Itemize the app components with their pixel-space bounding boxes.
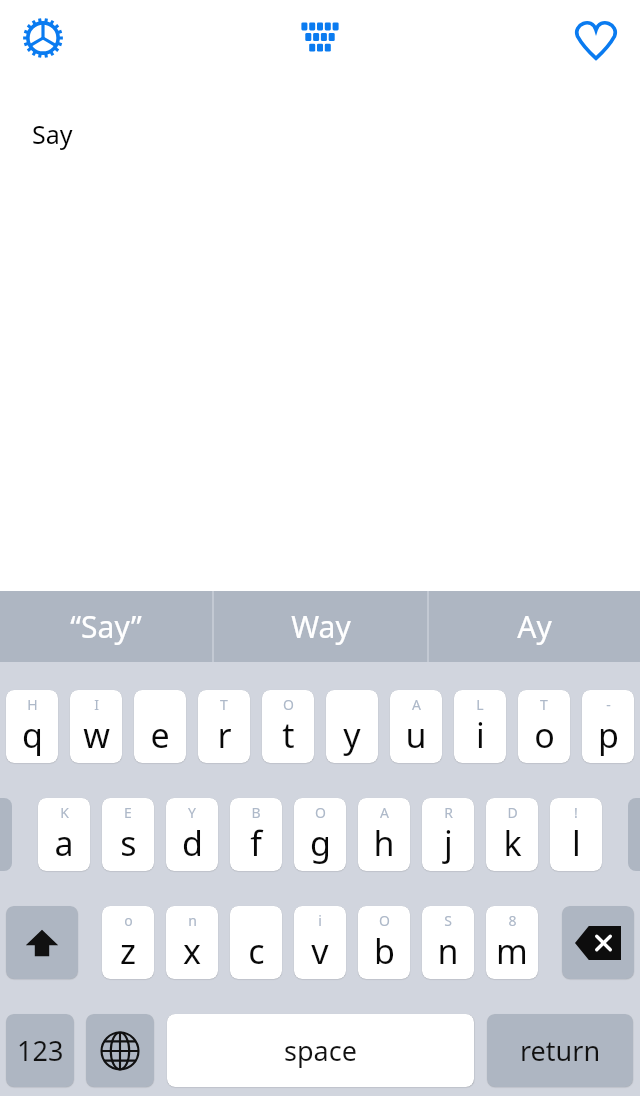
staticText: I	[94, 695, 99, 714]
staticText: 123	[17, 1032, 64, 1069]
staticText: w	[83, 712, 110, 758]
staticText: n	[437, 928, 459, 974]
staticText: Ay	[517, 606, 552, 647]
staticText: B	[251, 803, 261, 822]
staticText: -	[606, 695, 611, 714]
button[interactable]: O	[262, 690, 314, 763]
button[interactable]: Shift	[6, 906, 78, 979]
button[interactable]: i	[294, 906, 346, 979]
staticText: v	[311, 928, 329, 974]
staticText: 8	[508, 911, 517, 930]
button[interactable]: 8	[486, 906, 538, 979]
staticText: o	[534, 712, 555, 758]
staticText: i	[318, 911, 322, 930]
button[interactable]: Ay	[429, 591, 640, 662]
button[interactable]: A	[390, 690, 442, 763]
staticText: “Say”	[70, 606, 142, 647]
staticText: d	[182, 820, 203, 866]
button[interactable]: n	[166, 906, 218, 979]
button[interactable]: return	[487, 1014, 633, 1087]
button[interactable]: Settings	[11, 6, 75, 70]
staticText: f	[250, 820, 262, 866]
button[interactable]: Change keyboard language	[86, 1014, 154, 1087]
staticText: R	[444, 803, 453, 822]
staticText: T	[540, 695, 548, 714]
button[interactable]: -	[582, 690, 634, 763]
staticText: g	[310, 820, 331, 866]
staticText: E	[124, 803, 132, 822]
button[interactable]: S	[422, 906, 474, 979]
staticText: Y	[188, 803, 196, 822]
staticText: O	[379, 911, 390, 930]
button[interactable]: Way	[214, 591, 427, 662]
staticText: space	[284, 1032, 357, 1069]
staticText: r	[217, 712, 232, 758]
staticText: e	[150, 712, 170, 758]
button[interactable]: O	[294, 798, 346, 871]
button[interactable]: E	[102, 798, 154, 871]
button[interactable]: O	[358, 906, 410, 979]
staticText: Way	[291, 606, 351, 647]
staticText: o	[124, 911, 133, 930]
button[interactable]: A	[358, 798, 410, 871]
staticText: u	[405, 712, 427, 758]
staticText: s	[120, 820, 137, 866]
staticText: L	[476, 695, 484, 714]
staticText: H	[27, 695, 38, 714]
staticText: S	[444, 911, 452, 930]
staticText: k	[503, 820, 522, 866]
staticText: a	[54, 820, 74, 866]
staticText: z	[120, 928, 136, 974]
button[interactable]: c	[230, 906, 282, 979]
staticText: t	[282, 712, 295, 758]
staticText: A	[380, 803, 389, 822]
staticText: y	[343, 712, 361, 758]
staticText: h	[373, 820, 395, 866]
button[interactable]: 123	[6, 1014, 74, 1087]
staticText: O	[283, 695, 294, 714]
button[interactable]: Keyboard	[288, 6, 352, 70]
staticText: O	[315, 803, 326, 822]
button[interactable]: B	[230, 798, 282, 871]
button[interactable]: Favorites	[564, 6, 628, 70]
staticText: x	[183, 928, 201, 974]
button[interactable]: Y	[166, 798, 218, 871]
button[interactable]: More	[628, 798, 640, 871]
staticText: n	[188, 911, 197, 930]
staticText: A	[412, 695, 421, 714]
staticText: c	[248, 928, 265, 974]
staticText: l	[572, 820, 581, 866]
button[interactable]: space	[167, 1014, 474, 1087]
button[interactable]: T	[198, 690, 250, 763]
button[interactable]: I	[70, 690, 122, 763]
button[interactable]: K	[38, 798, 90, 871]
button[interactable]: y	[326, 690, 378, 763]
staticText: D	[507, 803, 518, 822]
button[interactable]: !	[550, 798, 602, 871]
staticText: return	[520, 1032, 601, 1069]
button[interactable]: L	[454, 690, 506, 763]
button[interactable]: T	[518, 690, 570, 763]
button[interactable]: More	[0, 798, 12, 871]
staticText: m	[496, 928, 528, 974]
staticText: !	[574, 803, 578, 822]
staticText: q	[22, 712, 43, 758]
staticText: i	[476, 712, 485, 758]
button[interactable]: D	[486, 798, 538, 871]
staticText: b	[374, 928, 395, 974]
button[interactable]: R	[422, 798, 474, 871]
button[interactable]: Backspace	[562, 906, 634, 979]
staticText: p	[598, 712, 619, 758]
staticText: T	[220, 695, 228, 714]
button[interactable]: H	[6, 690, 58, 763]
button[interactable]: e	[134, 690, 186, 763]
button[interactable]: “Say”	[0, 591, 212, 662]
staticText: j	[444, 820, 453, 866]
staticText: Say	[32, 117, 73, 151]
button[interactable]: o	[102, 906, 154, 979]
staticText: K	[60, 803, 69, 822]
